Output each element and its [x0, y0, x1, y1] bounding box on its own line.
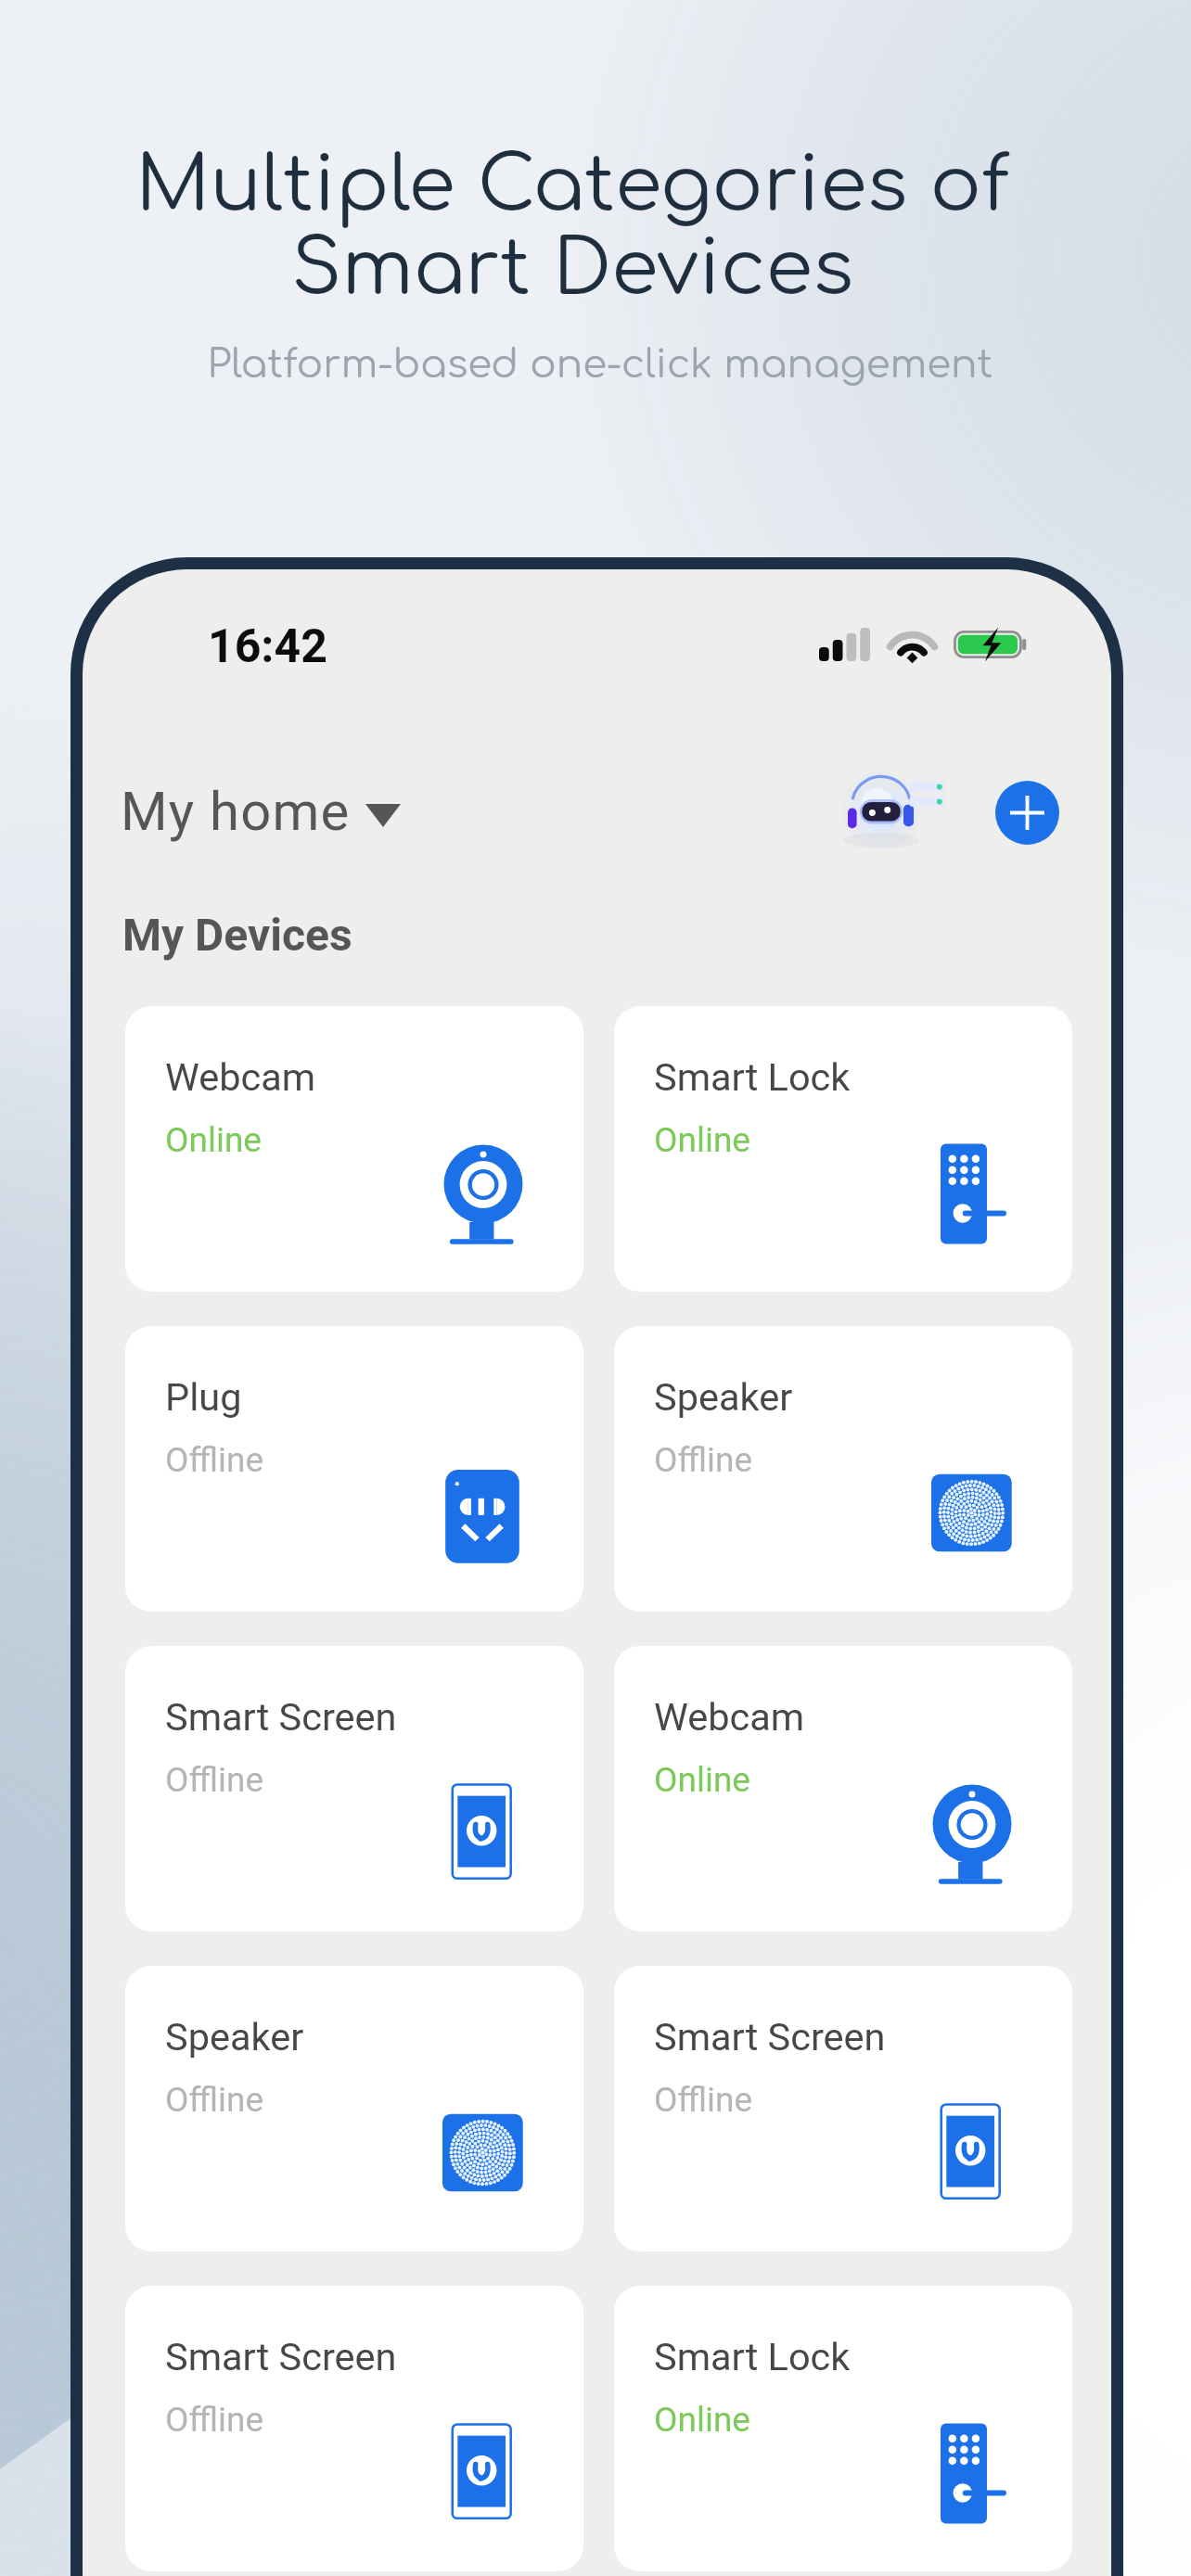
staticText: Smart Screen [165, 2334, 397, 2379]
staticText: Webcam [654, 1694, 805, 1740]
button[interactable]: Smart Lock [614, 1006, 1072, 1292]
staticText: Offline [165, 2400, 264, 2440]
staticText: Smart Screen [654, 2014, 886, 2060]
staticText: Offline [654, 2080, 753, 2120]
button[interactable]: Smart Screen [614, 1966, 1072, 2251]
button[interactable]: Speaker [614, 1326, 1072, 1612]
staticText: Smart Lock [654, 1054, 851, 1100]
staticText: Plug [165, 1374, 242, 1420]
button[interactable]: Smart Lock [614, 2286, 1072, 2571]
staticText: Online [165, 1120, 262, 1160]
staticText: Webcam [165, 1054, 316, 1100]
button[interactable]: Smart Screen [125, 1646, 583, 1932]
staticText: Online [654, 1760, 750, 1800]
staticText: Online [654, 2400, 750, 2440]
staticText: 16:42 [208, 619, 327, 674]
staticText: Speaker [654, 1374, 793, 1420]
button[interactable]: Plug [125, 1326, 583, 1612]
staticText: Smart Lock [654, 2334, 851, 2379]
staticText: Smart Screen [165, 1694, 397, 1740]
staticText: Multiple Categories of Smart Devices [0, 144, 1168, 312]
button[interactable]: AI assistant [840, 769, 950, 852]
staticText: Online [654, 1120, 750, 1160]
staticText: My home [121, 780, 351, 843]
staticText: Speaker [165, 2014, 304, 2060]
button[interactable]: Add device [995, 781, 1059, 845]
staticText: Platform-based one-click management [5, 343, 1191, 387]
staticText: Offline [165, 2080, 264, 2120]
button[interactable]: My home [121, 780, 401, 843]
button[interactable]: Smart Screen [125, 2286, 583, 2571]
button[interactable]: Webcam [125, 1006, 583, 1292]
staticText: My Devices [122, 909, 352, 961]
button[interactable]: Speaker [125, 1966, 583, 2251]
staticText: Offline [654, 1440, 753, 1480]
staticText: Offline [165, 1440, 264, 1480]
button[interactable]: Webcam [614, 1646, 1072, 1932]
staticText: Offline [165, 1760, 264, 1800]
